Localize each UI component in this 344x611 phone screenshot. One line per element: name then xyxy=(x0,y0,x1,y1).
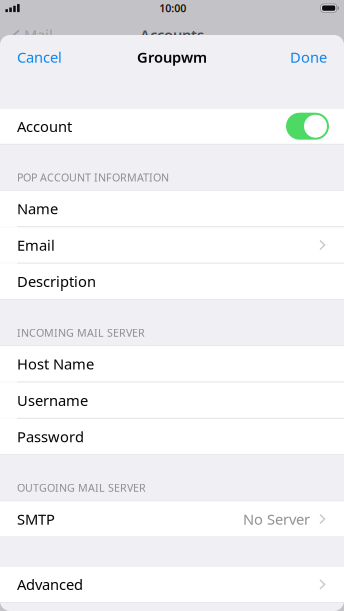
staticText: Host Name xyxy=(17,354,94,374)
button[interactable]: Name xyxy=(0,191,344,226)
button[interactable]: Cancel xyxy=(0,35,79,79)
staticText: Mail xyxy=(24,25,53,44)
button[interactable]: Username xyxy=(0,382,344,418)
button[interactable]: Done xyxy=(273,35,344,79)
staticText: Done xyxy=(290,47,327,67)
staticText: OUTGOING MAIL SERVER xyxy=(17,481,146,495)
staticText: Name xyxy=(17,199,58,218)
staticText: Password xyxy=(17,427,84,446)
staticText: Cancel xyxy=(17,47,62,67)
button[interactable]: Password xyxy=(0,419,344,454)
staticText: INCOMING MAIL SERVER xyxy=(17,325,145,340)
button[interactable]: SMTP xyxy=(0,501,344,537)
button[interactable]: Email xyxy=(0,227,344,263)
staticText: No Server xyxy=(243,509,310,529)
staticText: Groupwm xyxy=(137,47,207,67)
staticText: Username xyxy=(17,390,88,410)
staticText: SMTP xyxy=(17,509,55,529)
staticText: Account xyxy=(17,116,72,136)
staticText: Email xyxy=(17,235,55,255)
staticText: Advanced xyxy=(17,575,83,594)
staticText: Accounts xyxy=(140,25,204,44)
button[interactable]: Description xyxy=(0,264,344,299)
button[interactable]: Account xyxy=(0,108,344,144)
staticText: POP ACCOUNT INFORMATION xyxy=(17,170,169,184)
staticText: 10:00 xyxy=(159,1,186,15)
button[interactable]: Advanced xyxy=(0,567,344,602)
button[interactable]: Host Name xyxy=(0,346,344,381)
staticText: Description xyxy=(17,272,96,291)
